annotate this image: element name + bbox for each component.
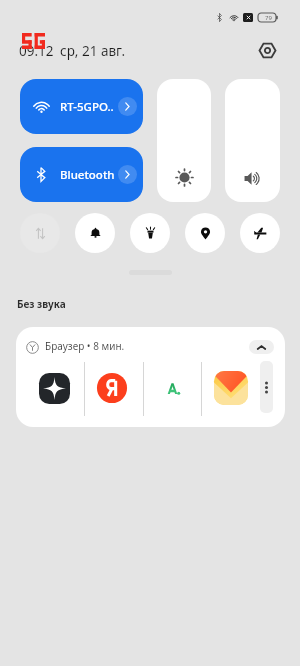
staticText: RT-5GPO.. [60, 99, 114, 115]
button[interactable]: Flashlight [130, 213, 170, 253]
button[interactable]: Браузер • 8 мин. [16, 327, 285, 427]
button[interactable]: Notifications [75, 213, 115, 253]
button[interactable]: Alisa assistant [143, 362, 201, 414]
button[interactable]: Brightness [157, 79, 211, 202]
staticText: Браузер • 8 мин. [45, 339, 125, 353]
button[interactable]: Mobile data [20, 213, 60, 253]
button[interactable]: Bluetooth [20, 147, 143, 202]
button[interactable]: More options [260, 361, 273, 413]
staticText: Без звука [17, 297, 66, 311]
button[interactable]: Airplane mode [240, 213, 280, 253]
button[interactable]: Alice [25, 362, 83, 414]
staticText: Bluetooth [60, 167, 115, 183]
button[interactable]: Location [185, 213, 225, 253]
staticText: 79 [265, 14, 272, 22]
button[interactable]: Yandex [83, 362, 141, 414]
button[interactable]: RT-5GPO.. [20, 79, 143, 134]
button[interactable]: Volume [225, 79, 280, 202]
staticText: 09.12 [19, 42, 54, 60]
button[interactable]: Collapse [249, 340, 274, 354]
button[interactable]: Mail [202, 362, 260, 414]
staticText: ср, 21 авг. [60, 42, 126, 60]
button[interactable]: Settings [255, 38, 279, 62]
